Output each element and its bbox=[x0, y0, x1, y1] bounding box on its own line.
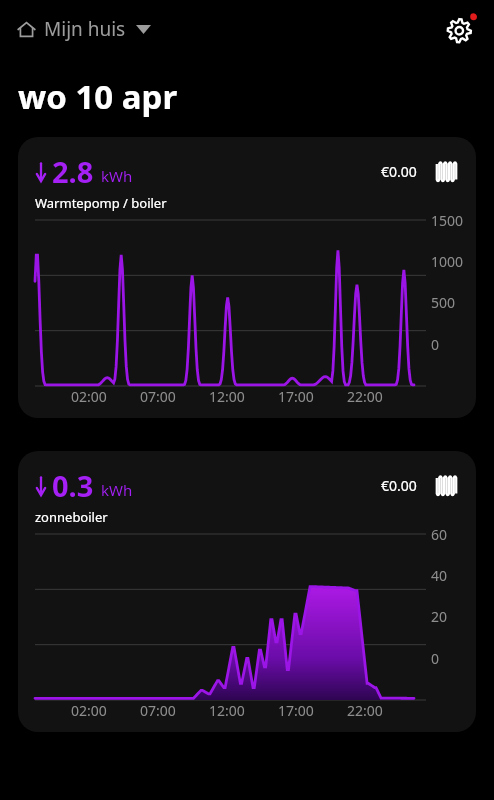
staticText: 20 bbox=[431, 607, 448, 626]
staticText: 17:00 bbox=[278, 387, 314, 406]
staticText: 12:00 bbox=[209, 387, 245, 406]
button[interactable]: Mijn huis bbox=[12, 11, 156, 47]
staticText: kWh bbox=[101, 480, 133, 500]
staticText: 1000 bbox=[431, 252, 464, 271]
staticText: Warmtepomp / boiler bbox=[35, 194, 167, 212]
staticText: 12:00 bbox=[209, 701, 245, 720]
staticText: €0.00 bbox=[381, 476, 417, 495]
other: Heating device bbox=[433, 472, 460, 499]
staticText: 22:00 bbox=[347, 387, 383, 406]
staticText: €0.00 bbox=[381, 162, 417, 181]
button[interactable]: Settings bbox=[440, 8, 482, 50]
staticText: 1500 bbox=[431, 211, 464, 230]
staticText: 02:00 bbox=[71, 387, 107, 406]
staticText: Mijn huis bbox=[44, 16, 126, 42]
staticText: 22:00 bbox=[347, 701, 383, 720]
other: Heating device bbox=[433, 158, 460, 185]
staticText: 60 bbox=[431, 525, 448, 544]
staticText: 0.3 bbox=[52, 466, 94, 505]
staticText: 17:00 bbox=[278, 701, 314, 720]
staticText: 07:00 bbox=[140, 387, 176, 406]
staticText: 07:00 bbox=[140, 701, 176, 720]
staticText: 40 bbox=[431, 566, 448, 585]
button[interactable]: 2.8 bbox=[18, 137, 476, 418]
staticText: kWh bbox=[101, 166, 133, 186]
staticText: zonneboiler bbox=[35, 508, 108, 526]
staticText: 0 bbox=[431, 649, 440, 668]
staticText: 0 bbox=[431, 335, 440, 354]
staticText: 2.8 bbox=[52, 152, 94, 191]
staticText: wo 10 apr bbox=[18, 74, 178, 119]
staticText: 02:00 bbox=[71, 701, 107, 720]
button[interactable]: 0.3 bbox=[18, 451, 476, 732]
staticText: 500 bbox=[431, 293, 456, 312]
